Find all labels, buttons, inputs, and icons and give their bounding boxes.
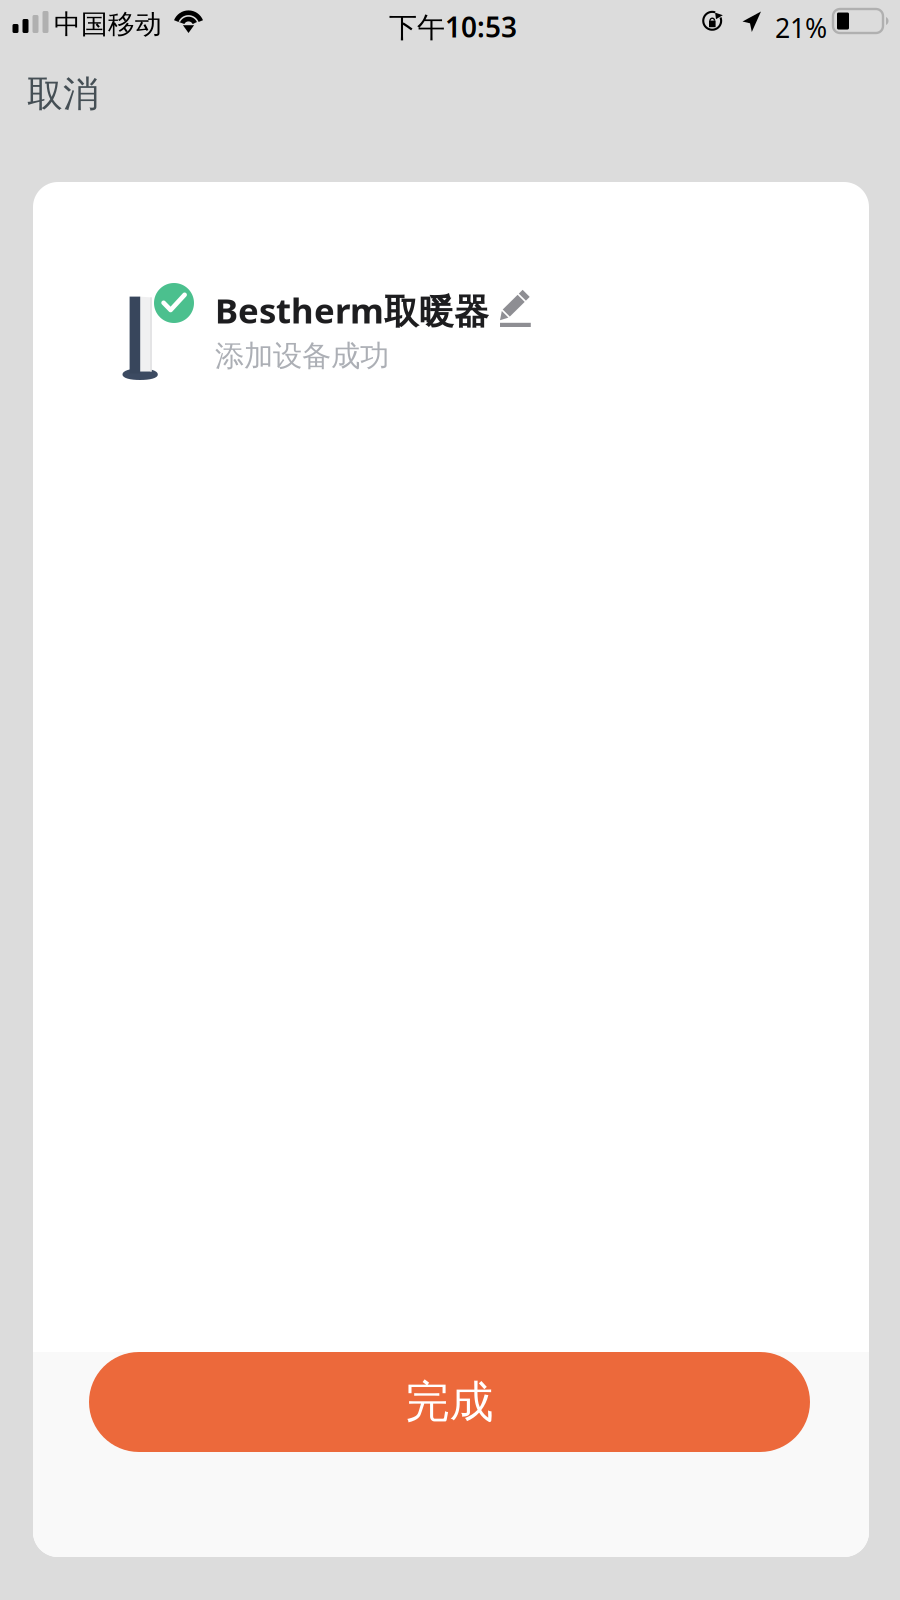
- staticText: 添加设备成功: [215, 338, 389, 374]
- staticText: 完成: [405, 1375, 493, 1429]
- button[interactable]: 完成: [89, 1352, 810, 1452]
- button[interactable]: 取消: [0, 62, 149, 126]
- staticText: Bestherm取暖器: [215, 287, 489, 333]
- button[interactable]: Rename device: [500, 289, 531, 328]
- staticText: 下午10:53: [389, 8, 517, 45]
- staticText: 取消: [27, 72, 99, 116]
- staticText: 中国移动: [54, 8, 162, 41]
- staticText: 21%: [775, 10, 827, 45]
